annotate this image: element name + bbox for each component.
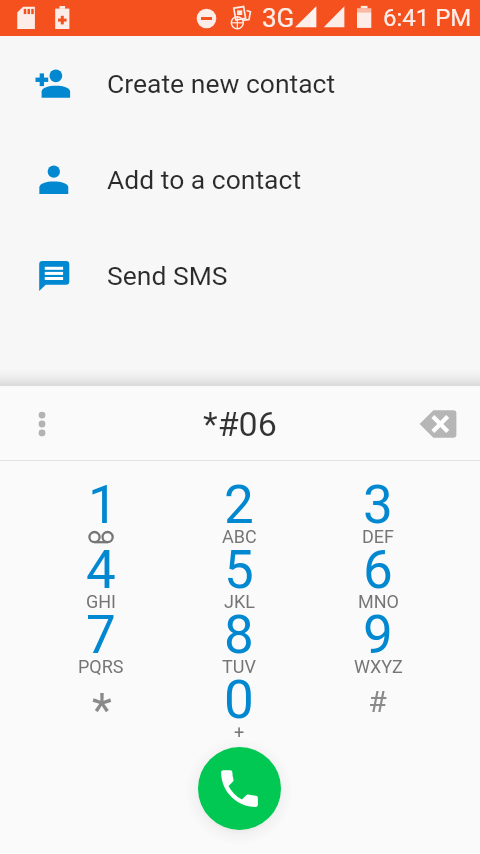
button[interactable]: 0	[175, 647, 303, 712]
button[interactable]: More options	[18, 400, 66, 448]
staticText: MNO	[358, 591, 399, 612]
button[interactable]: Send SMS	[0, 228, 480, 324]
button[interactable]: 1	[37, 452, 165, 517]
staticText: PQRS	[78, 656, 124, 677]
staticText: WXYZ	[354, 656, 403, 677]
staticText: 3G	[262, 3, 295, 33]
staticText: 6:41 PM	[383, 4, 472, 32]
button[interactable]: #	[314, 647, 442, 712]
staticText: *	[92, 683, 112, 737]
staticText: DEF	[362, 526, 394, 547]
button[interactable]: 6	[314, 517, 442, 582]
staticText: Send SMS	[107, 260, 228, 291]
staticText: 5	[224, 539, 254, 601]
button[interactable]: 2	[175, 452, 303, 517]
staticText: 0	[224, 669, 254, 731]
staticText: +	[234, 721, 245, 742]
staticText: GHI	[86, 591, 116, 612]
button[interactable]: Call	[198, 747, 281, 830]
staticText: 7	[86, 604, 116, 666]
staticText: JKL	[224, 591, 255, 612]
staticText: 6	[363, 539, 393, 601]
staticText: Create new contact	[107, 68, 336, 99]
button[interactable]: 9	[314, 582, 442, 647]
button[interactable]: Delete	[412, 398, 464, 450]
button[interactable]: 7	[37, 582, 165, 647]
button[interactable]: 4	[37, 517, 165, 582]
staticText: *#06	[203, 404, 277, 444]
staticText: #	[368, 684, 387, 719]
button[interactable]: Create new contact	[0, 36, 480, 132]
staticText: 4	[86, 539, 116, 601]
button[interactable]: Add to a contact	[0, 132, 480, 228]
staticText: 2	[224, 474, 254, 536]
button[interactable]: 8	[175, 582, 303, 647]
button[interactable]: *	[37, 647, 165, 712]
staticText: 9	[363, 604, 393, 666]
staticText: 1	[88, 474, 118, 536]
button[interactable]: 3	[314, 452, 442, 517]
button[interactable]: 5	[175, 517, 303, 582]
staticText: 3	[363, 474, 393, 536]
staticText: TUV	[222, 656, 256, 677]
staticText: 8	[224, 604, 254, 666]
staticText: ABC	[222, 526, 257, 547]
staticText: Add to a contact	[107, 164, 302, 195]
